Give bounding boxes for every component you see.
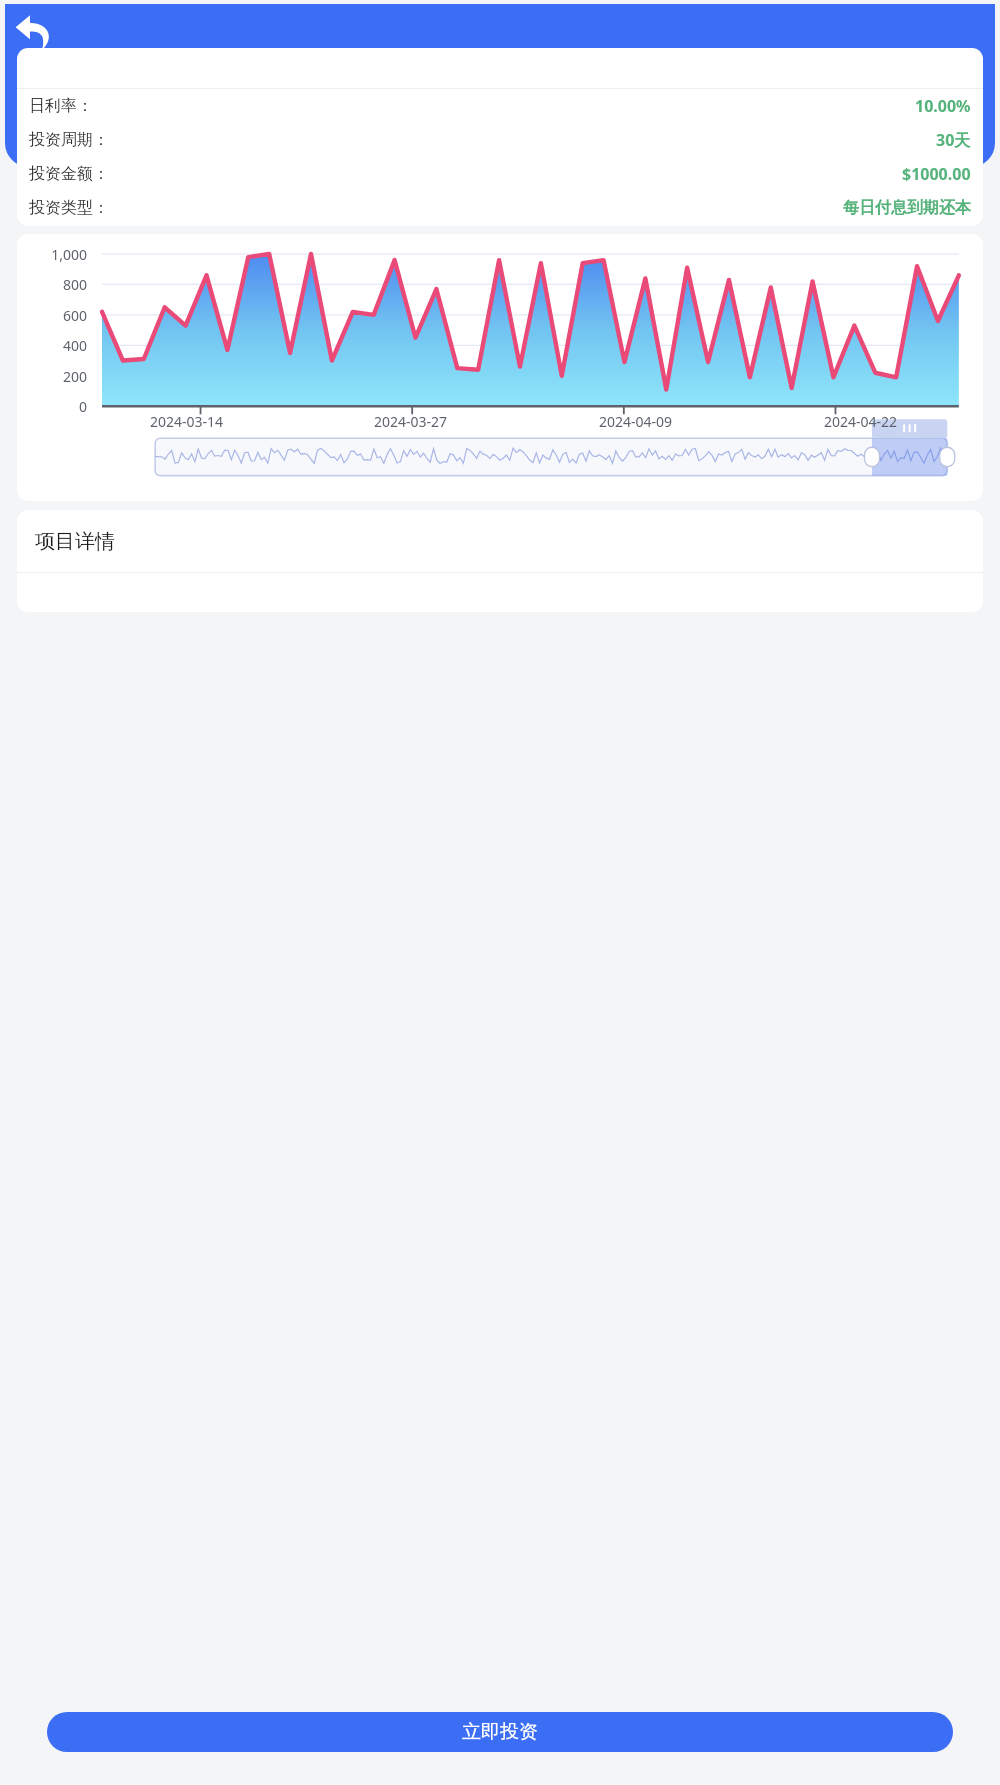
staticText: 2024-04-09 xyxy=(599,412,673,431)
button[interactable]: 立即投资 xyxy=(47,1712,953,1752)
staticText: 200 xyxy=(17,367,87,386)
staticText: 投资周期： xyxy=(29,130,109,150)
staticText: 0 xyxy=(17,397,87,416)
staticText: $1000.00 xyxy=(902,163,971,185)
staticText: 400 xyxy=(17,336,87,355)
button[interactable]: 项目详情 xyxy=(17,510,983,612)
staticText: 10.00% xyxy=(915,95,971,117)
staticText: 800 xyxy=(17,275,87,294)
staticText: 2024-04-22 xyxy=(824,412,898,431)
staticText: 日利率： xyxy=(29,96,93,116)
button[interactable]: 投资类型： xyxy=(17,191,983,225)
staticText: 600 xyxy=(17,306,87,325)
staticText: 投资类型： xyxy=(29,198,109,218)
staticText: 立即投资 xyxy=(462,1720,538,1744)
staticText: 30天 xyxy=(936,129,971,151)
staticText: 1,000 xyxy=(17,245,87,264)
staticText: 项目详情 xyxy=(35,529,115,554)
button[interactable]: 日利率： xyxy=(17,89,983,123)
button[interactable]: Back xyxy=(9,7,59,57)
button[interactable]: 投资金额： xyxy=(17,157,983,191)
staticText: 每日付息到期还本 xyxy=(843,198,971,218)
staticText: 投资金额： xyxy=(29,164,109,184)
staticText: 2024-03-14 xyxy=(150,412,224,431)
button[interactable]: 投资周期： xyxy=(17,123,983,157)
staticText: 2024-03-27 xyxy=(374,412,448,431)
